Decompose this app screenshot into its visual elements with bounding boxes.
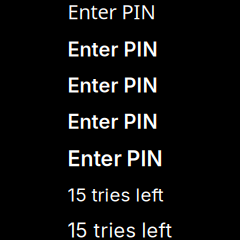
staticText: Enter PIN <box>67 0 155 25</box>
staticText: 15 tries left <box>67 183 163 206</box>
staticText: Enter PIN <box>67 109 157 134</box>
staticText: Enter PIN <box>67 37 157 61</box>
staticText: Enter PIN <box>67 146 162 171</box>
staticText: Enter PIN <box>67 73 157 97</box>
staticText: 15 tries left <box>67 218 172 240</box>
